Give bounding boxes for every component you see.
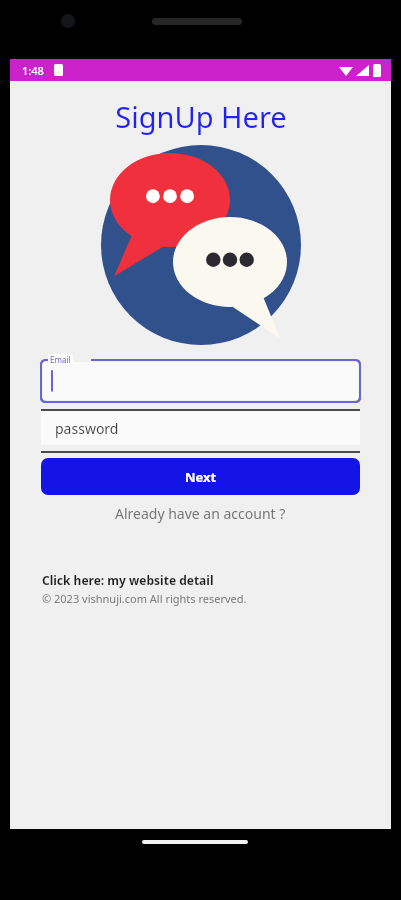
button[interactable]: Click here: my website detail bbox=[42, 572, 214, 588]
staticText: © 2023 vishnuji.com All rights reserved. bbox=[42, 591, 247, 606]
staticText: Email bbox=[50, 354, 71, 365]
button[interactable]: Email bbox=[41, 354, 360, 402]
button[interactable]: Next bbox=[41, 458, 360, 495]
button[interactable]: password bbox=[41, 409, 360, 445]
staticText: password bbox=[55, 419, 119, 438]
button[interactable]: Already have an account ? bbox=[109, 502, 292, 525]
staticText: SignUp Here bbox=[115, 97, 287, 136]
staticText: Next bbox=[185, 468, 217, 486]
staticText: 1:48 bbox=[22, 63, 44, 78]
